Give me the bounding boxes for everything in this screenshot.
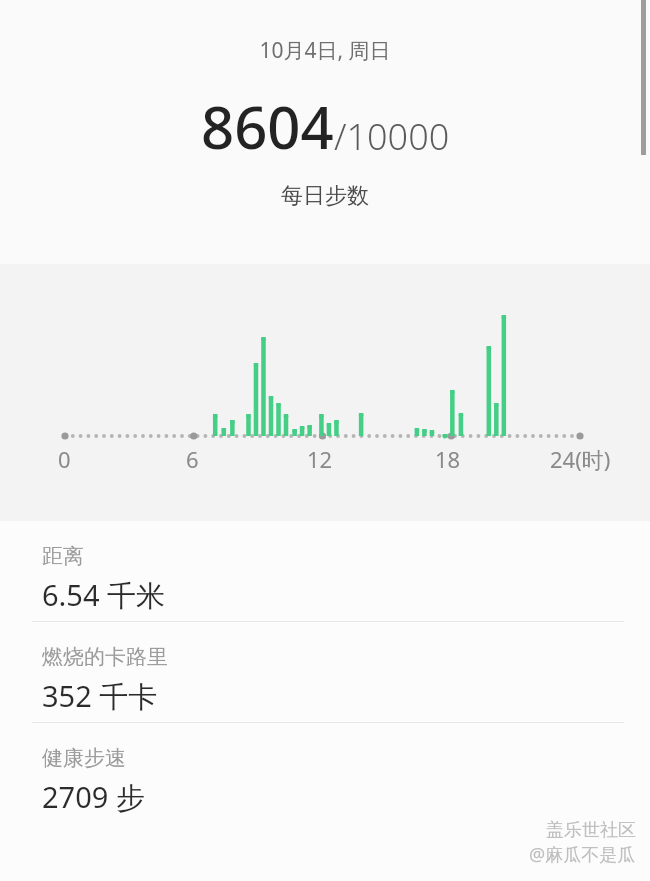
button[interactable]: 距离	[0, 521, 650, 621]
staticText: 0	[58, 444, 71, 474]
button[interactable]: 每日步数图表	[0, 264, 650, 521]
staticText: /10000	[334, 112, 450, 161]
staticText: 每日步数	[281, 182, 369, 210]
staticText: @麻瓜不是瓜	[529, 842, 636, 867]
staticText: 距离	[42, 543, 84, 569]
button[interactable]: 健康步速	[0, 723, 650, 823]
staticText: 18	[435, 444, 461, 474]
staticText: 2709 步	[42, 777, 145, 817]
staticText: 24(时)	[550, 444, 611, 474]
staticText: 燃烧的卡路里	[42, 644, 168, 670]
staticText: 6.54 千米	[42, 575, 166, 615]
staticText: 8604	[201, 87, 334, 166]
staticText: 12	[307, 444, 333, 474]
button[interactable]: 10月4日, 周日	[0, 0, 650, 264]
staticText: 352 千卡	[42, 676, 158, 716]
staticText: 6	[186, 444, 199, 474]
staticText: 盖乐世社区	[546, 819, 636, 842]
staticText: 10月4日, 周日	[259, 36, 391, 65]
staticText: 健康步速	[42, 745, 126, 771]
button[interactable]: 燃烧的卡路里	[0, 622, 650, 722]
